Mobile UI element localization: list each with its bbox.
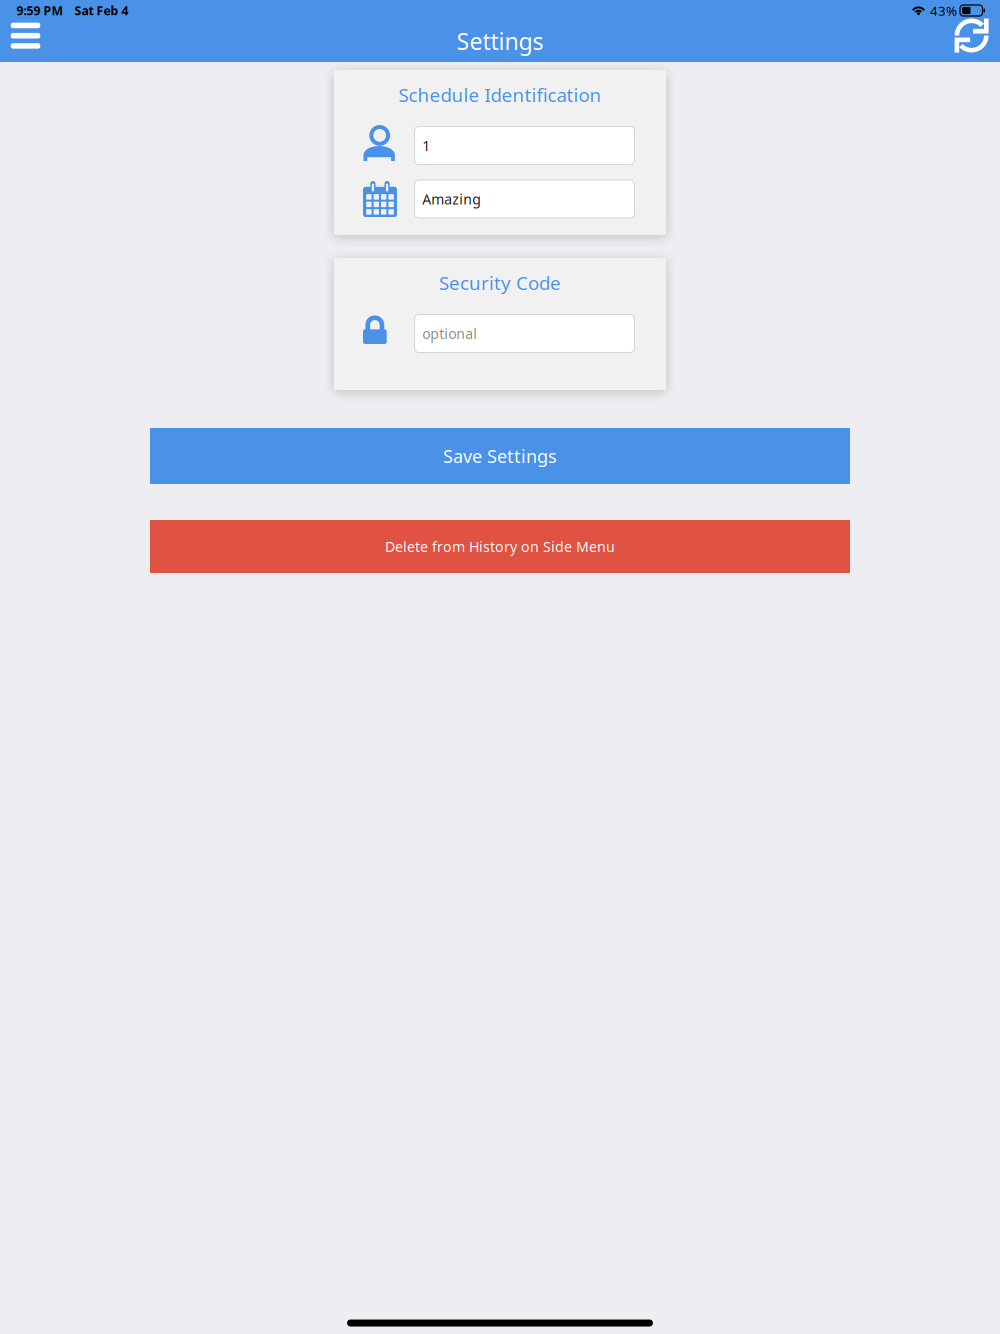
staticText: Save Settings: [443, 444, 557, 468]
button[interactable]: Save Settings: [150, 428, 850, 484]
button[interactable]: Delete from History on Side Menu: [150, 520, 850, 573]
staticText: Sat Feb 4: [74, 2, 128, 19]
staticText: Settings: [456, 25, 543, 57]
staticText: 43%: [930, 1, 957, 20]
staticText: Amazing: [422, 189, 481, 209]
staticText: Schedule Identification: [398, 82, 601, 107]
button[interactable]: Refresh: [955, 16, 1000, 56]
staticText: optional: [422, 324, 477, 343]
button[interactable]: Menu: [0, 16, 50, 56]
staticText: Delete from History on Side Menu: [385, 537, 615, 556]
staticText: Security Code: [439, 270, 561, 295]
staticText: 9:59 PM: [16, 2, 63, 19]
staticText: 1: [422, 136, 430, 155]
